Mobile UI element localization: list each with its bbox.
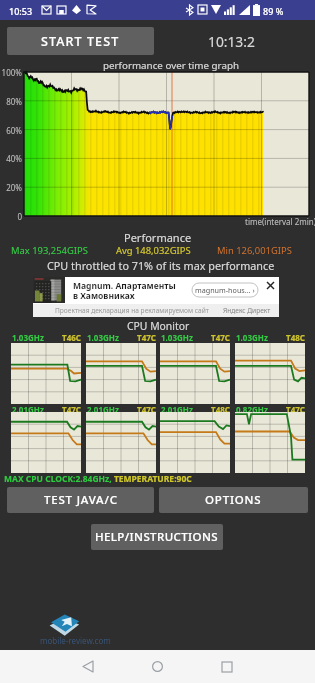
staticText: 1.03GHz	[12, 332, 44, 343]
button[interactable]: Close ad	[261, 277, 279, 293]
staticText: 20%	[0, 182, 22, 193]
staticText: T47C	[235, 404, 305, 415]
staticText: 80%	[0, 96, 22, 107]
staticText: T48C	[160, 404, 230, 415]
button[interactable]: Magnum. Апартаменты	[33, 277, 279, 317]
staticText: Min 126,001GIPS	[217, 244, 292, 257]
staticText: 0	[0, 211, 22, 222]
staticText: Яндекс Директ	[223, 306, 271, 315]
staticText: TEST JAVA/C	[44, 492, 118, 508]
button[interactable]: OPTIONS	[159, 487, 308, 513]
staticText: CPU Monitor	[127, 319, 190, 333]
staticText: mobile-review.com	[40, 635, 111, 646]
staticText: T47C	[86, 404, 156, 415]
staticText: T47C	[86, 332, 156, 343]
staticText: HELP/INSTRUCTIONS	[95, 529, 219, 545]
staticText: T47C	[160, 332, 230, 343]
staticText: Max 193,254GIPS	[11, 244, 88, 257]
staticText: magnum-hous... ›	[195, 285, 255, 295]
staticText: 0.82GHz	[236, 404, 268, 415]
button[interactable]: HELP/INSTRUCTIONS	[91, 524, 223, 550]
staticText: Avg 148,032GIPS	[116, 244, 191, 257]
button[interactable]: Home	[137, 650, 177, 683]
staticText: Magnum. Апартаменты	[73, 280, 176, 292]
staticText: 1.03GHz	[161, 332, 193, 343]
staticText: 100%	[0, 67, 22, 78]
staticText: performance over time graph	[103, 59, 239, 72]
button[interactable]: Back	[68, 650, 108, 683]
staticText: 2.01GHz	[161, 404, 193, 415]
staticText: time(interval 2min)	[245, 216, 315, 227]
staticText: T48C	[235, 332, 305, 343]
staticText: 1.03GHz	[236, 332, 268, 343]
button[interactable]: magnum-hous... ›	[192, 283, 258, 297]
other: App logo	[46, 610, 82, 638]
staticText: 1.03GHz	[87, 332, 119, 343]
staticText: CPU throttled to 71% of its max performa…	[47, 258, 275, 273]
staticText: OPTIONS	[205, 492, 262, 508]
staticText: 89 %	[263, 5, 284, 17]
staticText: 2.01GHz	[87, 404, 119, 415]
staticText: 10:13:2	[208, 32, 255, 51]
staticText: START TEST	[41, 33, 120, 50]
button[interactable]: START TEST	[7, 27, 154, 55]
button[interactable]: TEST JAVA/C	[7, 487, 154, 513]
staticText: Проектная декларация на рекламируемом са…	[55, 306, 209, 315]
staticText: 60%	[0, 125, 22, 136]
staticText: T46C	[11, 332, 81, 343]
staticText: 10:53	[9, 5, 33, 17]
button[interactable]: Recent apps	[207, 650, 247, 683]
staticText: 2.01GHz	[12, 404, 44, 415]
staticText: в Хамовниках	[73, 290, 135, 302]
staticText: MAX CPU CLOCK:2.84GHz, TEMPERATURE:90C	[4, 473, 192, 485]
staticText: Performance	[124, 230, 192, 245]
staticText: T47C	[11, 404, 81, 415]
staticText: 40%	[0, 153, 22, 164]
